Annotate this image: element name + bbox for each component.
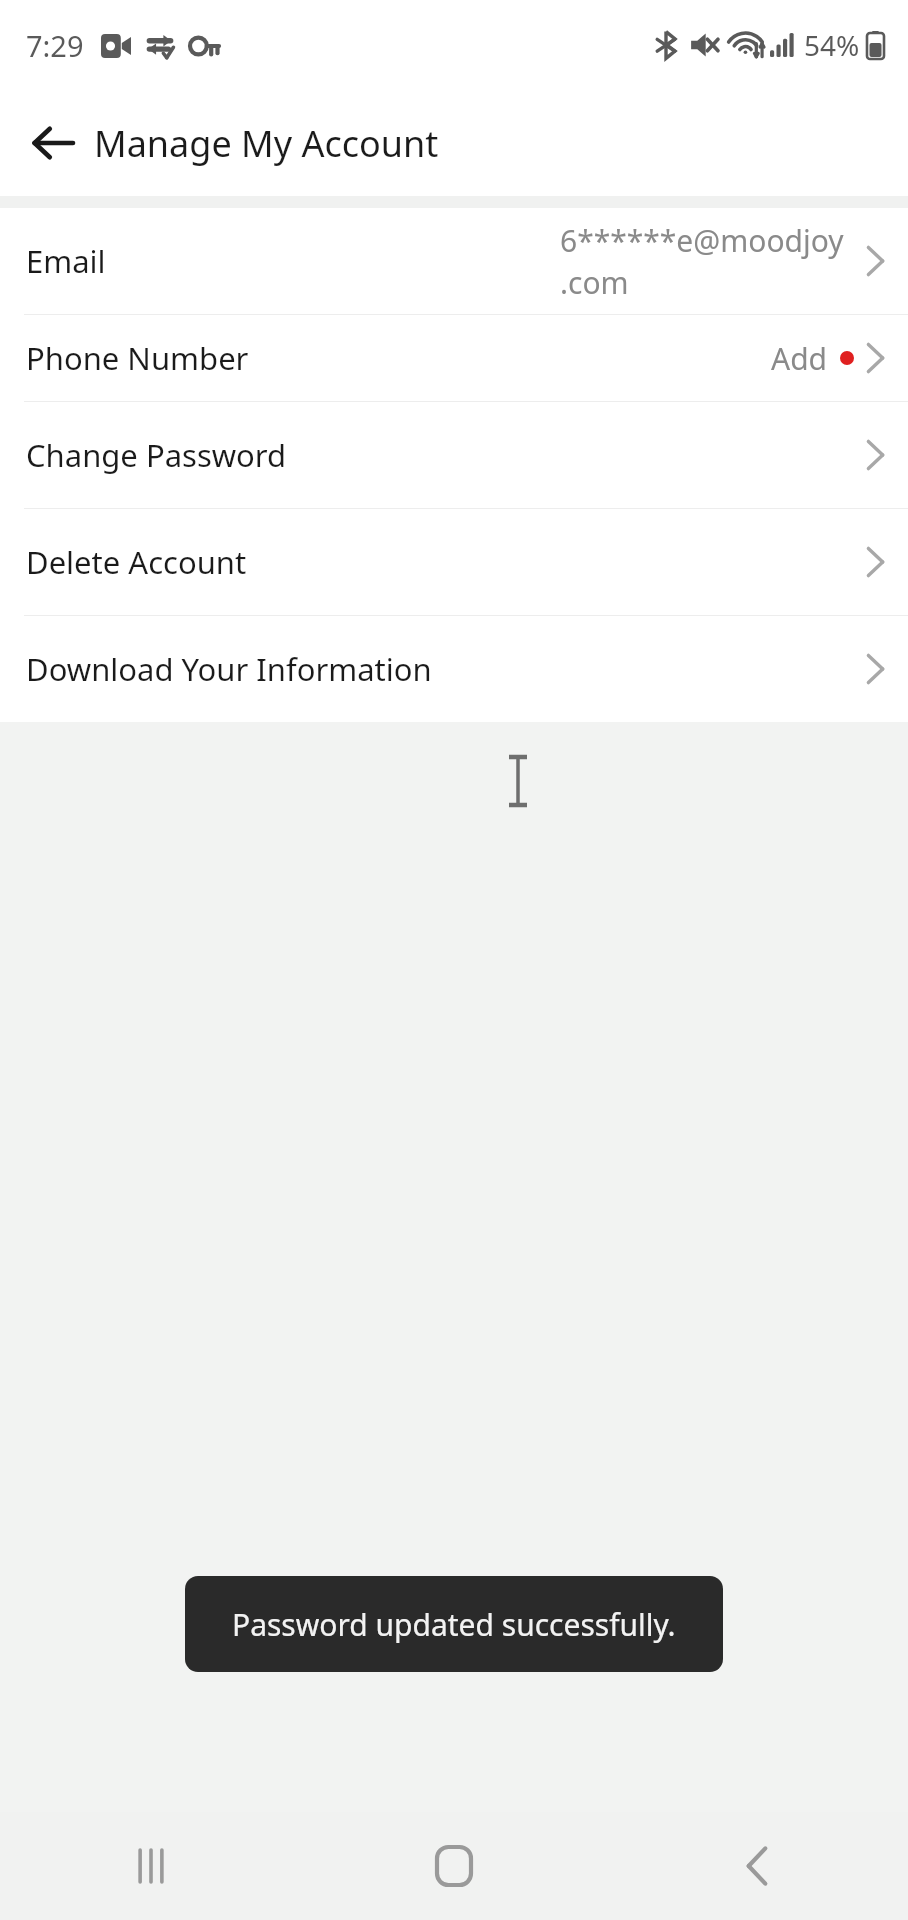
staticText: Password updated successfully. bbox=[232, 1604, 676, 1645]
button[interactable]: Phone Number bbox=[0, 315, 908, 401]
staticText: 54% bbox=[804, 26, 860, 64]
button[interactable]: Back bbox=[605, 1812, 908, 1920]
button[interactable]: Recent apps bbox=[0, 1812, 302, 1920]
button[interactable]: Download Your Information bbox=[0, 616, 908, 722]
staticText: 7:29 bbox=[26, 26, 84, 65]
button[interactable]: Email bbox=[0, 208, 908, 314]
staticText: Change Password bbox=[26, 434, 287, 476]
staticText: Phone Number bbox=[26, 337, 249, 379]
staticText: Delete Account bbox=[26, 541, 247, 583]
staticText: Download Your Information bbox=[26, 648, 432, 690]
button[interactable]: Change Password bbox=[0, 402, 908, 508]
button[interactable]: Delete Account bbox=[0, 509, 908, 615]
staticText: 6******e@moodjoy .com bbox=[560, 220, 844, 303]
staticText: Add bbox=[771, 338, 828, 379]
staticText: Email bbox=[26, 240, 106, 282]
staticText: Manage My Account bbox=[94, 119, 439, 168]
button[interactable]: Back bbox=[14, 104, 92, 182]
button[interactable]: Home bbox=[302, 1812, 605, 1920]
